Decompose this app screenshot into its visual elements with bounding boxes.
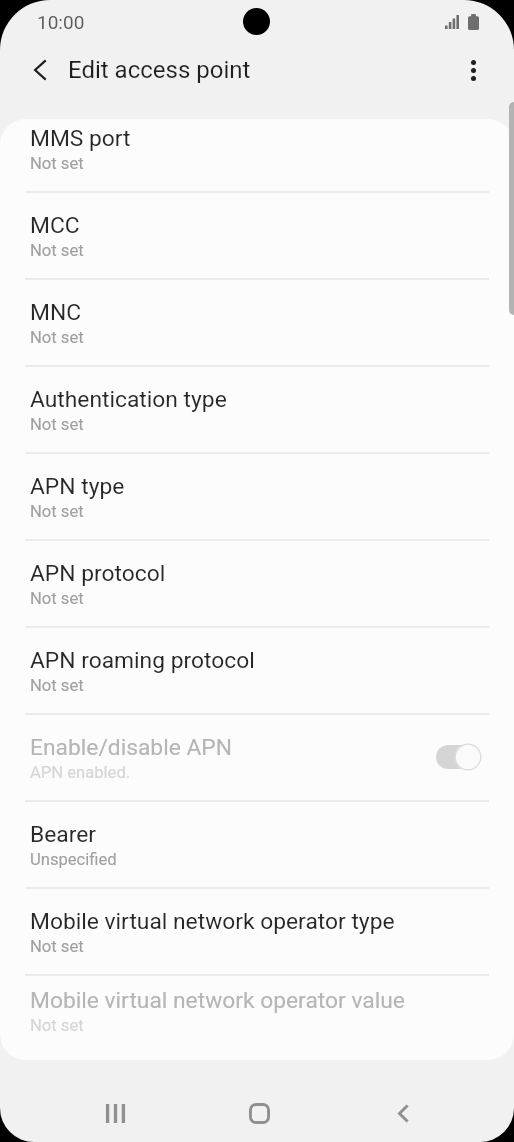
- staticText: Bearer: [30, 821, 97, 848]
- button[interactable]: Enable/disable APN: [436, 742, 484, 772]
- button[interactable]: MNC: [0, 280, 514, 367]
- button[interactable]: Navigate up: [14, 44, 66, 96]
- staticText: APN enabled.: [30, 763, 131, 782]
- staticText: APN protocol: [30, 560, 166, 587]
- staticText: APN roaming protocol: [30, 647, 255, 674]
- staticText: APN type: [30, 473, 125, 500]
- staticText: Not set: [30, 502, 84, 521]
- button[interactable]: MMS port: [0, 119, 514, 193]
- button[interactable]: Back: [368, 1078, 438, 1142]
- button[interactable]: Home: [224, 1078, 294, 1142]
- staticText: Not set: [30, 415, 84, 434]
- button[interactable]: APN type: [0, 454, 514, 541]
- staticText: Not set: [30, 676, 84, 695]
- staticText: Not set: [30, 154, 84, 173]
- staticText: MNC: [30, 299, 82, 326]
- staticText: Not set: [30, 937, 84, 956]
- staticText: MMS port: [30, 125, 131, 152]
- staticText: Edit access point: [68, 56, 251, 84]
- button[interactable]: Mobile virtual network operator type: [0, 889, 514, 976]
- button[interactable]: APN roaming protocol: [0, 628, 514, 715]
- button[interactable]: MCC: [0, 193, 514, 280]
- button[interactable]: More options: [447, 44, 499, 96]
- staticText: Unspecified: [30, 850, 117, 869]
- staticText: Not set: [30, 328, 84, 347]
- staticText: 10:00: [37, 11, 85, 33]
- button[interactable]: APN protocol: [0, 541, 514, 628]
- button[interactable]: Recent apps: [80, 1078, 150, 1142]
- staticText: Not set: [30, 589, 84, 608]
- staticText: Authentication type: [30, 386, 227, 413]
- button[interactable]: Mobile virtual network operator value: [0, 976, 514, 1047]
- staticText: Mobile virtual network operator value: [30, 987, 405, 1014]
- staticText: Enable/disable APN: [30, 734, 232, 761]
- button[interactable]: Bearer: [0, 802, 514, 889]
- staticText: MCC: [30, 212, 80, 239]
- button[interactable]: Enable/disable APN: [0, 715, 514, 802]
- staticText: Not set: [30, 241, 84, 260]
- staticText: Mobile virtual network operator type: [30, 908, 395, 935]
- button[interactable]: Authentication type: [0, 367, 514, 454]
- staticText: Not set: [30, 1016, 84, 1035]
